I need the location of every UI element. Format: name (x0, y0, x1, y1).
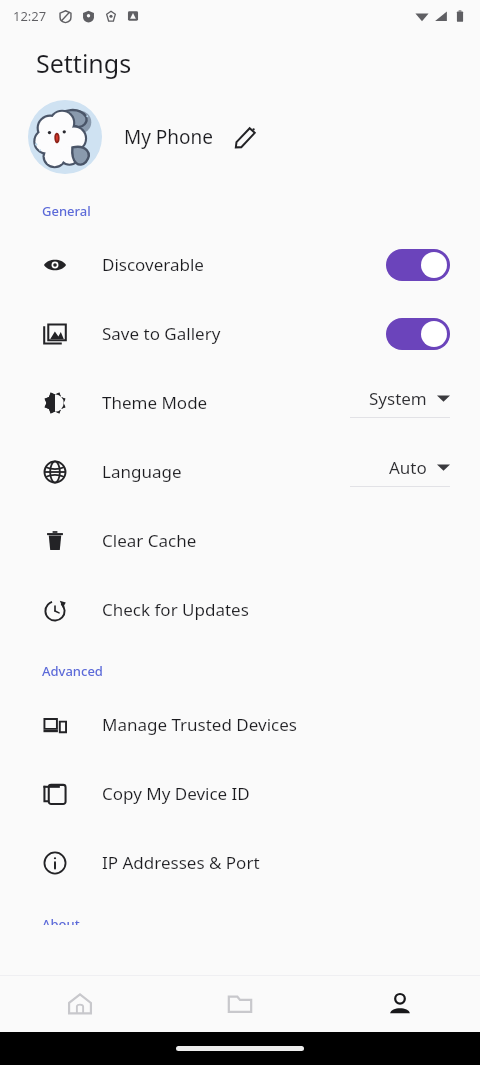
button[interactable]: Toggle on (386, 249, 450, 281)
button[interactable]: My Phone (0, 94, 480, 180)
button[interactable]: Auto (344, 456, 450, 487)
staticText: System (369, 387, 427, 410)
staticText: Settings (36, 46, 132, 80)
staticText: Theme Mode (102, 391, 208, 414)
staticText: Save to Gallery (102, 322, 221, 345)
button[interactable]: Save to Gallery (0, 299, 480, 368)
staticText: 12:27 (13, 7, 47, 25)
staticText: Manage Trusted Devices (102, 713, 297, 736)
button[interactable]: Manage Trusted Devices (0, 690, 480, 759)
staticText: General (42, 202, 91, 220)
button[interactable]: IP Addresses & Port (0, 828, 480, 897)
button[interactable]: Language (0, 437, 480, 506)
staticText: Discoverable (102, 253, 204, 276)
staticText: Language (102, 460, 182, 483)
button[interactable]: Theme Mode (0, 368, 480, 437)
staticText: Copy My Device ID (102, 782, 250, 805)
button[interactable]: Toggle on (386, 318, 450, 350)
staticText: My Phone (124, 124, 214, 150)
staticText: IP Addresses & Port (102, 851, 260, 874)
button[interactable]: Files (160, 975, 320, 1032)
button[interactable]: Home (0, 975, 160, 1032)
staticText: Check for Updates (102, 598, 249, 621)
button[interactable]: Profile (320, 975, 480, 1032)
button[interactable]: Edit device name (228, 120, 262, 154)
button[interactable]: Discoverable (0, 230, 480, 299)
button[interactable]: Clear Cache (0, 506, 480, 575)
button[interactable]: Copy My Device ID (0, 759, 480, 828)
button[interactable]: Check for Updates (0, 575, 480, 644)
staticText: Advanced (42, 662, 103, 680)
button[interactable]: System (344, 387, 450, 418)
staticText: About (42, 915, 80, 925)
staticText: Clear Cache (102, 529, 197, 552)
staticText: Auto (389, 456, 427, 479)
